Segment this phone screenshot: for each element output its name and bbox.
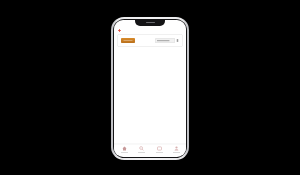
- button[interactable]: Profile: [169, 144, 183, 155]
- button[interactable]: Select option: [155, 38, 175, 43]
- button[interactable]: Add: [121, 38, 135, 43]
- button[interactable]: Menu: [176, 38, 179, 43]
- button[interactable]: Add: [117, 34, 183, 47]
- button[interactable]: Home: [117, 144, 131, 155]
- button[interactable]: Search: [134, 144, 148, 155]
- button[interactable]: Favorites: [152, 144, 166, 155]
